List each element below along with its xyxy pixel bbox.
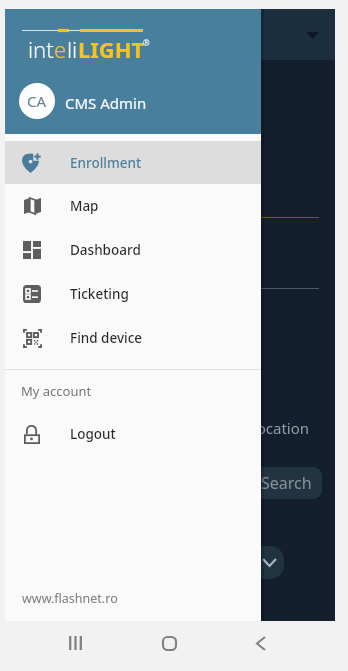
staticText: int bbox=[28, 34, 54, 64]
button[interactable]: Home bbox=[145, 619, 193, 667]
staticText: Dashboard bbox=[70, 241, 141, 259]
button[interactable]: Ticketing bbox=[5, 272, 261, 316]
button[interactable]: Back bbox=[237, 619, 285, 667]
button[interactable]: Recent apps bbox=[51, 619, 99, 667]
button[interactable]: Find device bbox=[5, 316, 261, 360]
staticText: Search bbox=[261, 472, 312, 494]
staticText: Ticketing bbox=[70, 285, 129, 303]
staticText: My account bbox=[21, 382, 92, 400]
staticText: ® bbox=[143, 37, 150, 48]
button[interactable]: Dropdown menu bbox=[299, 22, 325, 48]
staticText: Search by location bbox=[181, 418, 310, 438]
button[interactable]: Search bbox=[246, 467, 322, 499]
button[interactable]: Dashboard bbox=[5, 228, 261, 272]
staticText: www.flashnet.ro bbox=[22, 590, 118, 607]
staticText: LIGHT bbox=[78, 34, 145, 64]
staticText: Map bbox=[70, 197, 99, 215]
button[interactable]: Logout bbox=[5, 412, 261, 456]
staticText: CMS Admin bbox=[65, 93, 147, 113]
button[interactable]: Map bbox=[5, 184, 261, 228]
staticText: Logout bbox=[70, 425, 116, 443]
staticText: Find device bbox=[70, 329, 143, 347]
staticText: li bbox=[67, 34, 78, 64]
staticText: e bbox=[54, 34, 67, 64]
staticText: Enrollment bbox=[70, 154, 142, 172]
staticText: CA bbox=[27, 91, 47, 111]
button[interactable]: Enrollment bbox=[5, 141, 261, 184]
button[interactable]: Expand bbox=[237, 546, 284, 579]
